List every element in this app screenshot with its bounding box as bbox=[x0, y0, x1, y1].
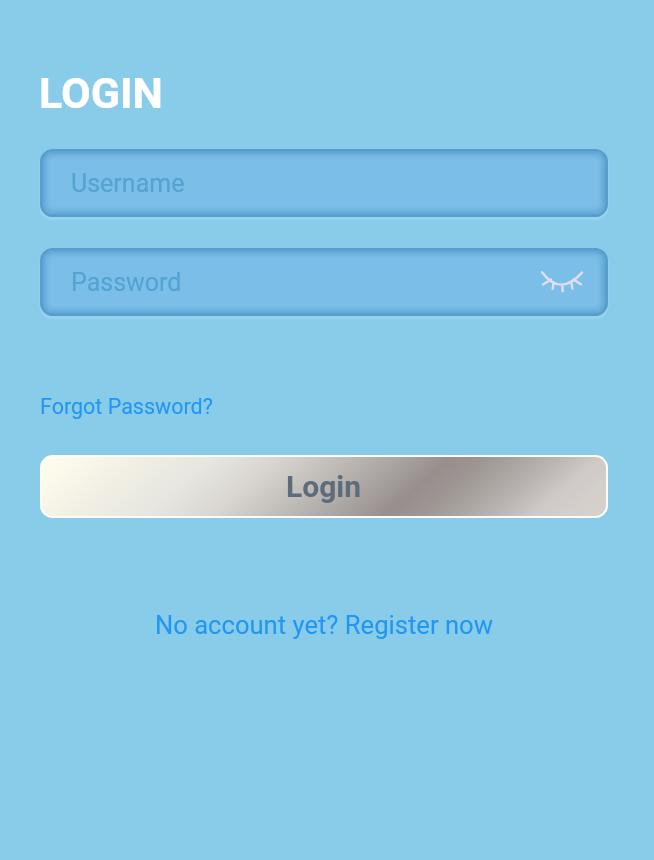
staticText: LOGIN bbox=[39, 68, 163, 118]
staticText: No account yet? Register now bbox=[155, 610, 493, 640]
button[interactable]: Password bbox=[40, 248, 608, 316]
button[interactable]: No account yet? Register now bbox=[155, 610, 493, 640]
button[interactable]: Username bbox=[40, 149, 608, 217]
staticText: Forgot Password? bbox=[40, 394, 213, 419]
button[interactable]: Show password bbox=[536, 256, 588, 308]
button[interactable]: Forgot Password? bbox=[40, 394, 213, 419]
staticText: Password bbox=[71, 268, 182, 297]
staticText: Login bbox=[286, 469, 362, 504]
button[interactable]: Login bbox=[42, 457, 606, 516]
staticText: Username bbox=[71, 169, 185, 198]
